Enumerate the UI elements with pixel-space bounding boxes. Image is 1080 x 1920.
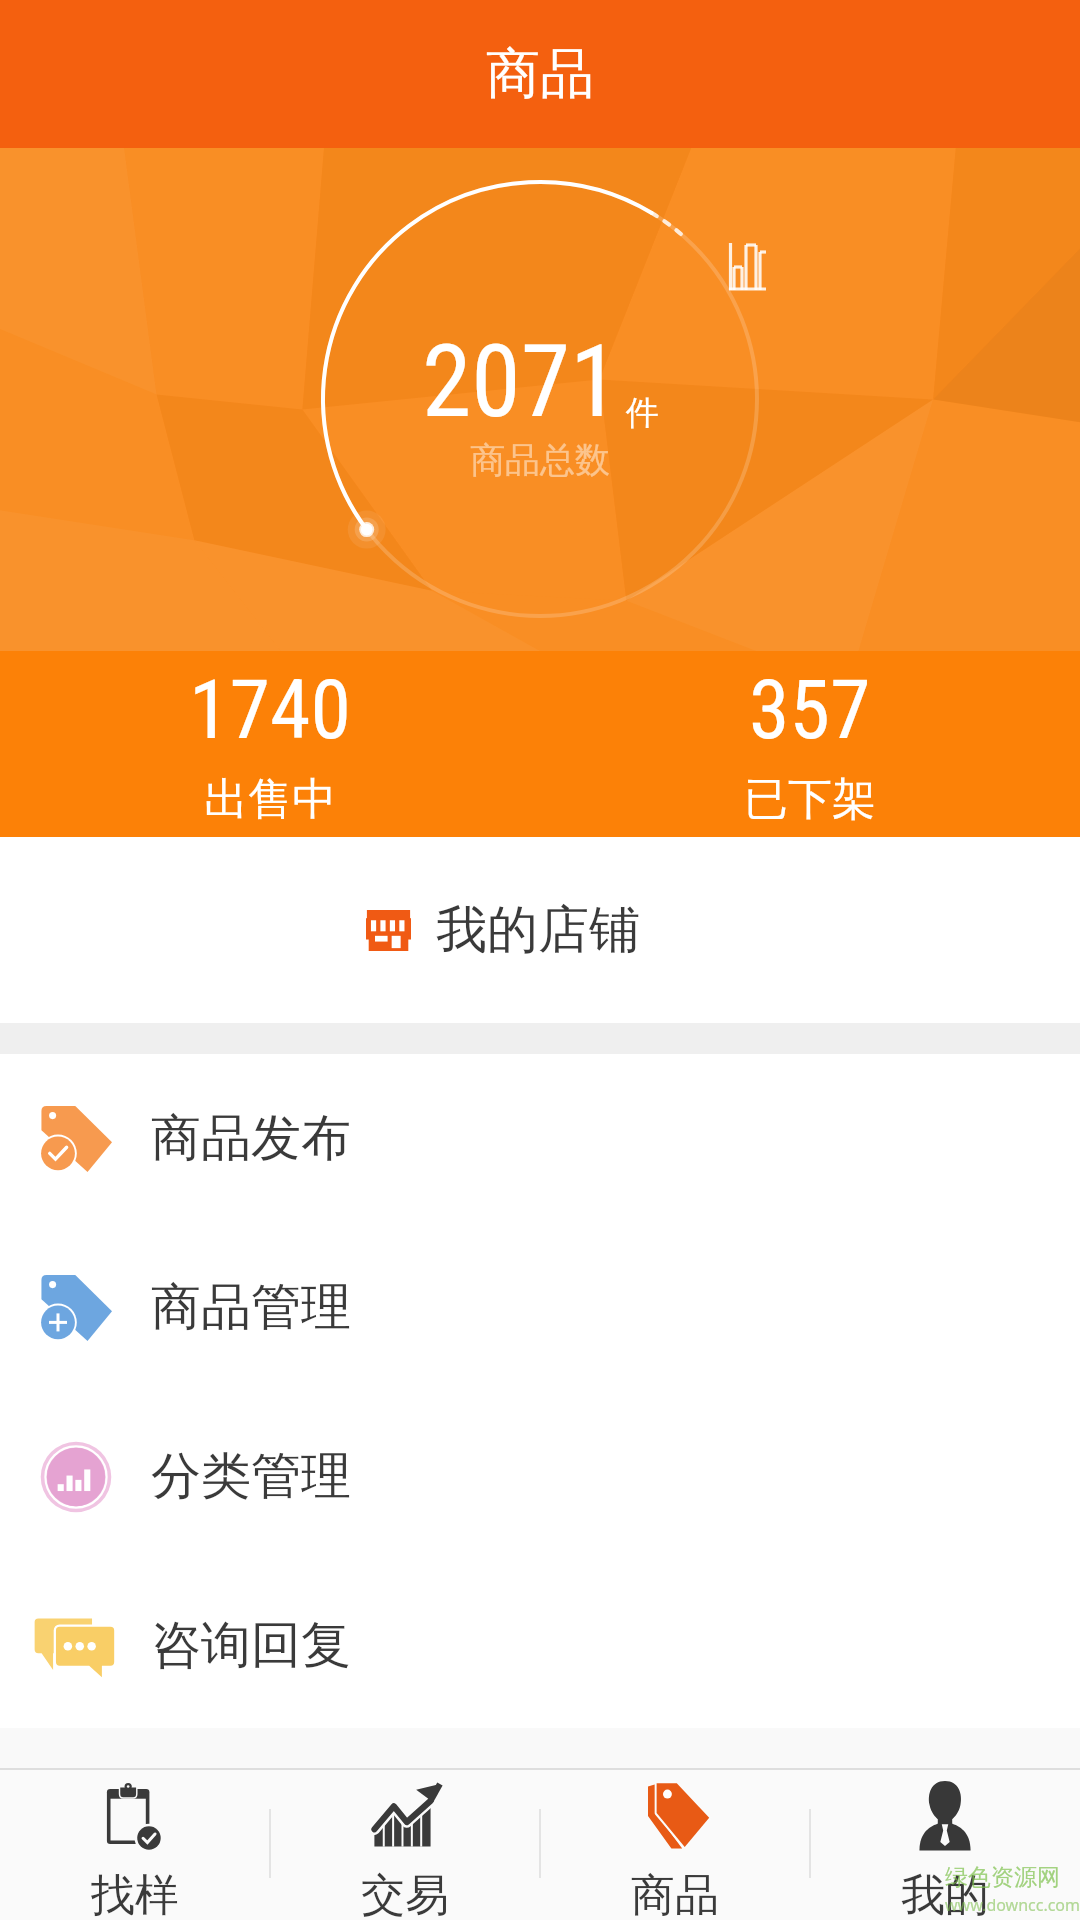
button[interactable]: 商品发布 <box>0 1054 1080 1223</box>
staticText: 商品发布 <box>151 1107 351 1170</box>
staticText: 交易 <box>361 1868 449 1920</box>
button[interactable]: 商品 <box>540 1768 810 1920</box>
staticText: 出售中 <box>204 772 336 827</box>
button[interactable]: 我的 <box>810 1768 1080 1920</box>
staticText: 我的 <box>901 1868 989 1920</box>
staticText: www.downcc.com <box>945 1894 1080 1916</box>
staticText: 商品 <box>631 1868 719 1920</box>
button[interactable]: 咨询回复 <box>0 1561 1080 1730</box>
staticText: 商品管理 <box>151 1276 351 1339</box>
staticText: 2071 <box>422 323 620 440</box>
staticText: 1740 <box>189 662 351 758</box>
staticText: 咨询回复 <box>151 1614 351 1677</box>
staticText: 分类管理 <box>151 1445 351 1508</box>
staticText: 商品总数 <box>470 438 610 482</box>
staticText: 我的店铺 <box>436 898 640 962</box>
staticText: 商品 <box>486 40 594 108</box>
staticText: 357 <box>749 662 871 758</box>
staticText: 已下架 <box>744 772 876 827</box>
staticText: 件 <box>626 392 659 434</box>
button[interactable]: 357 <box>540 651 1080 837</box>
button[interactable]: 我的店铺 <box>0 837 1080 1023</box>
button[interactable]: 交易 <box>270 1768 540 1920</box>
staticText: 找样 <box>91 1868 179 1920</box>
staticText: 绿色资源网 <box>945 1863 1060 1892</box>
button[interactable]: 商品管理 <box>0 1223 1080 1392</box>
button[interactable]: 分类管理 <box>0 1392 1080 1561</box>
button[interactable]: 找样 <box>0 1768 270 1920</box>
button[interactable]: 1740 <box>0 651 540 837</box>
